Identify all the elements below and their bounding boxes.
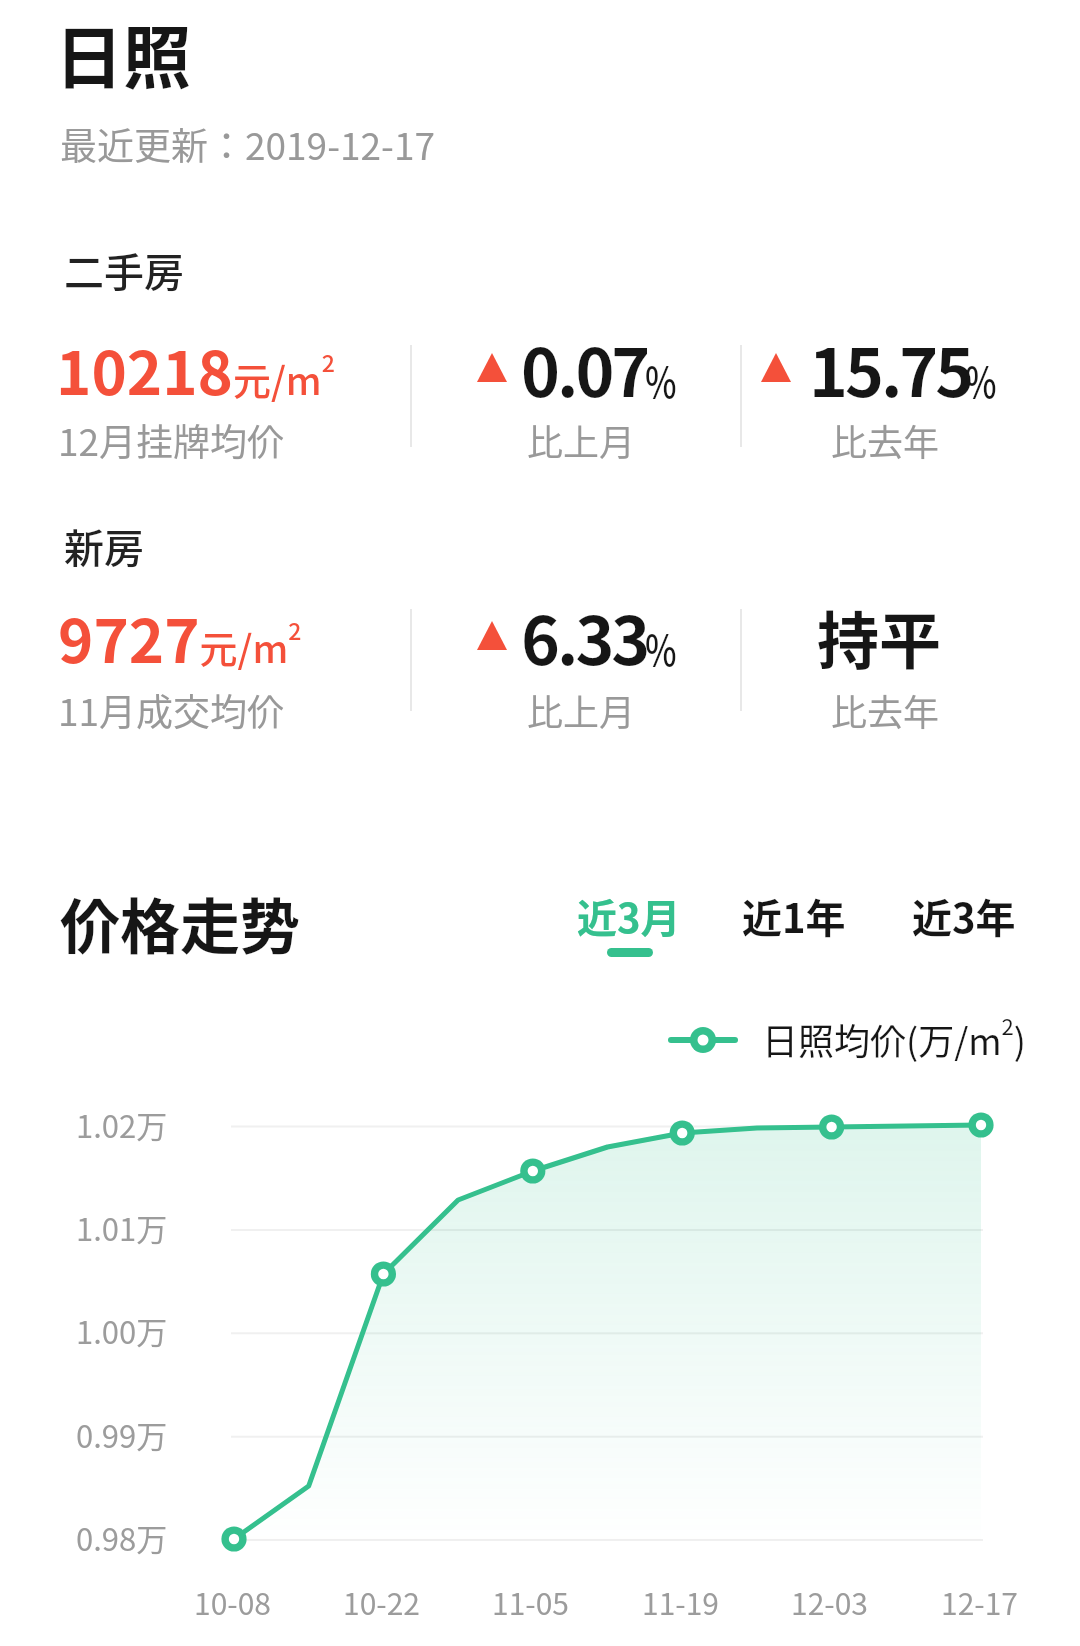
staticText: 比上月	[527, 414, 636, 466]
staticText: 持平	[817, 592, 942, 682]
staticText: 二手房	[64, 241, 184, 299]
staticText: %	[645, 349, 677, 410]
staticText: %	[965, 349, 997, 410]
staticText: 日照均价(万/m2)	[762, 1009, 1026, 1065]
staticText: 11-19	[642, 1580, 720, 1623]
staticText: 12-03	[791, 1580, 869, 1623]
staticText: 1.02万	[76, 1102, 168, 1147]
staticText: 0.98万	[76, 1515, 168, 1560]
staticText: 价格走势	[60, 879, 300, 966]
staticText: 最近更新：2019-12-17	[60, 117, 435, 171]
staticText: 10-22	[343, 1580, 421, 1623]
staticText: 11-05	[492, 1580, 570, 1623]
staticText: 比上月	[527, 684, 636, 736]
staticText: 12-17	[941, 1580, 1019, 1623]
button[interactable]: 近3年	[0, 0, 170, 80]
staticText: 10218元/m2	[56, 325, 335, 412]
button[interactable]: 近3月	[0, 0, 170, 80]
staticText: 0.07	[521, 320, 648, 416]
staticText: 比去年	[831, 414, 940, 466]
staticText: 1.00万	[76, 1308, 168, 1353]
staticText: %	[645, 617, 677, 678]
staticText: 10-08	[194, 1580, 272, 1623]
button[interactable]: 近1年	[0, 0, 170, 80]
staticText: 0.99万	[76, 1412, 168, 1457]
staticText: 新房	[64, 517, 144, 575]
staticText: 近3年	[912, 887, 1016, 945]
staticText: 日照	[55, 4, 192, 102]
staticText: 9727元/m2	[58, 593, 302, 680]
staticText: 比去年	[831, 684, 940, 736]
staticText: 12月挂牌均价	[58, 413, 285, 467]
staticText: 近1年	[742, 887, 846, 945]
staticText: 1.01万	[76, 1205, 168, 1250]
staticText: 15.75	[809, 320, 972, 416]
staticText: 6.33	[521, 588, 648, 684]
staticText: 11月成交均价	[58, 683, 285, 737]
staticText: 近3月	[577, 887, 681, 945]
